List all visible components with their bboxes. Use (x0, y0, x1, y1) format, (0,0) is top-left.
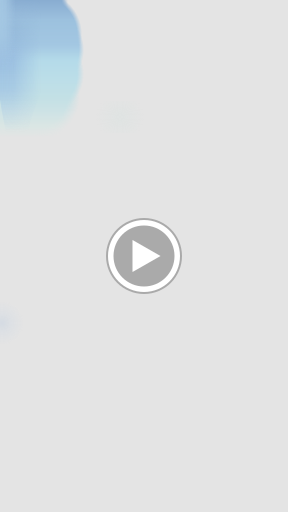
button[interactable]: Play (106, 218, 182, 294)
